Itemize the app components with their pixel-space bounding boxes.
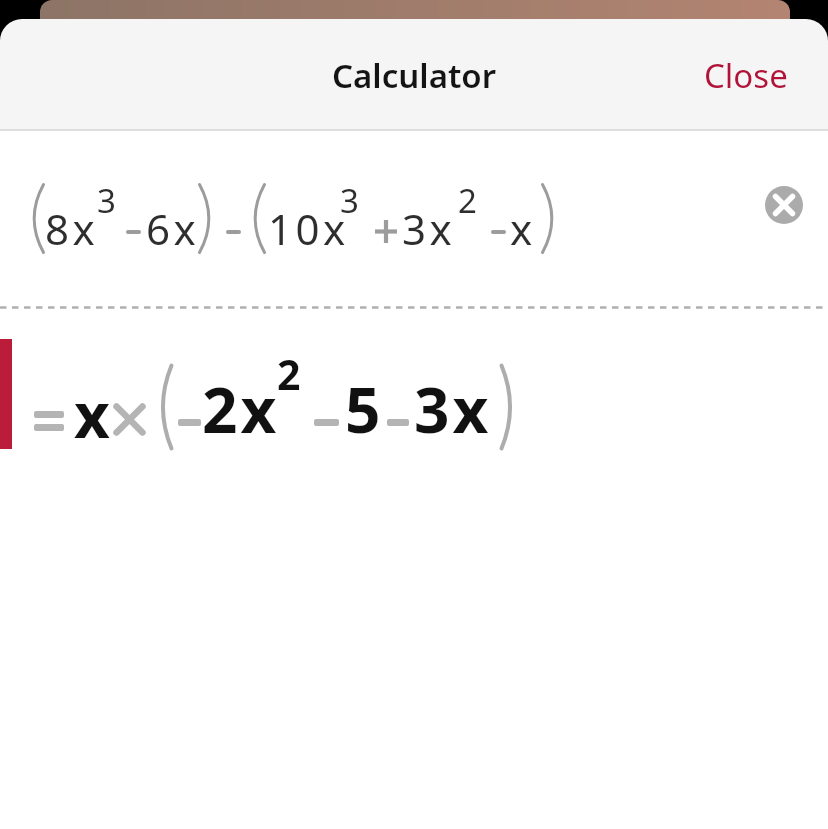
staticText: 6x <box>146 200 200 257</box>
staticText: 2x <box>202 367 280 451</box>
staticText: 3x <box>402 200 456 257</box>
staticText: x <box>510 200 536 257</box>
staticText: 2 <box>458 178 477 223</box>
staticText: Calculator <box>332 53 497 98</box>
button[interactable] <box>765 186 803 224</box>
button[interactable]: Close <box>688 42 804 108</box>
staticText: 8x <box>45 200 99 257</box>
staticText: 3 <box>340 178 359 223</box>
staticText: 5 <box>345 367 384 451</box>
staticText: 3x <box>414 367 492 451</box>
staticText: 2 <box>277 346 301 402</box>
staticText: 10x <box>268 200 349 257</box>
staticText: 3 <box>97 178 116 223</box>
staticText: x <box>74 372 110 456</box>
staticText: Close <box>704 53 788 98</box>
